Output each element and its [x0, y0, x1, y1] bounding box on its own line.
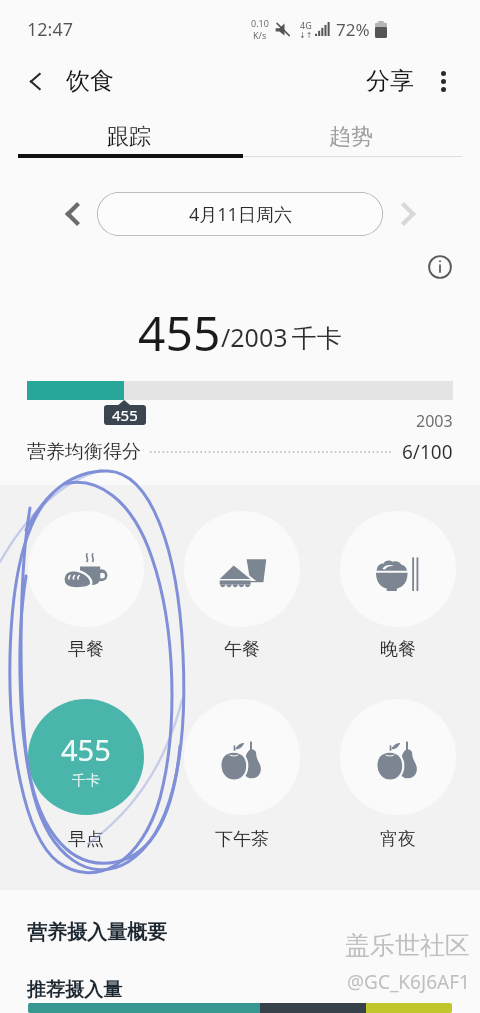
button[interactable]: 晚餐 [340, 511, 456, 627]
staticText: K/s [253, 29, 267, 41]
button[interactable]: 4月11日周六 [97, 192, 383, 236]
staticText: 跟踪 [107, 123, 151, 151]
button[interactable]: 下午茶 [184, 699, 300, 815]
button[interactable]: 跟踪 [18, 113, 240, 161]
button[interactable]: 455 [28, 699, 144, 815]
staticText: 455 [138, 300, 221, 360]
button[interactable]: Next day [390, 196, 426, 232]
button[interactable]: Back [13, 59, 57, 103]
staticText: 72% [336, 18, 370, 41]
staticText: 4G [300, 19, 312, 31]
button[interactable]: 宵夜 [340, 699, 456, 815]
staticText: 早餐 [68, 638, 104, 661]
staticText: 455 [112, 405, 138, 425]
staticText: 营养均衡得分 [27, 440, 141, 464]
button[interactable]: 营养均衡得分 [0, 434, 480, 470]
button[interactable]: Information [421, 248, 459, 286]
staticText: 4月11日周六 [189, 202, 292, 227]
staticText: 6/100 [402, 439, 453, 465]
staticText: /2003 千卡 [221, 320, 342, 354]
button[interactable]: 趋势 [240, 113, 462, 161]
staticText: 盖乐世社区 [345, 930, 470, 961]
staticText: 趋势 [329, 123, 373, 151]
button[interactable]: Previous day [54, 196, 90, 232]
staticText: 宵夜 [380, 828, 416, 851]
staticText: 推荐摄入量 [27, 978, 122, 1002]
staticText: 0.10 [251, 17, 269, 29]
staticText: 早点 [68, 828, 104, 851]
staticText: 455 [61, 730, 111, 769]
staticText: 12:47 [27, 17, 74, 42]
staticText: @GC_K6J6AF1 [347, 969, 470, 995]
staticText: 晚餐 [380, 638, 416, 661]
staticText: 午餐 [224, 638, 260, 661]
staticText: 分享 [366, 66, 414, 96]
staticText: 饮食 [66, 66, 114, 96]
button[interactable]: More options [421, 59, 465, 103]
staticText: ↓↑ [299, 31, 313, 40]
button[interactable]: 午餐 [184, 511, 300, 627]
button[interactable]: 分享 [358, 56, 422, 106]
staticText: 营养摄入量概要 [27, 920, 167, 945]
staticText: 下午茶 [215, 828, 269, 851]
staticText: 千卡 [72, 772, 100, 790]
button[interactable]: 早餐 [28, 511, 144, 627]
staticText: 2003 [416, 410, 453, 432]
